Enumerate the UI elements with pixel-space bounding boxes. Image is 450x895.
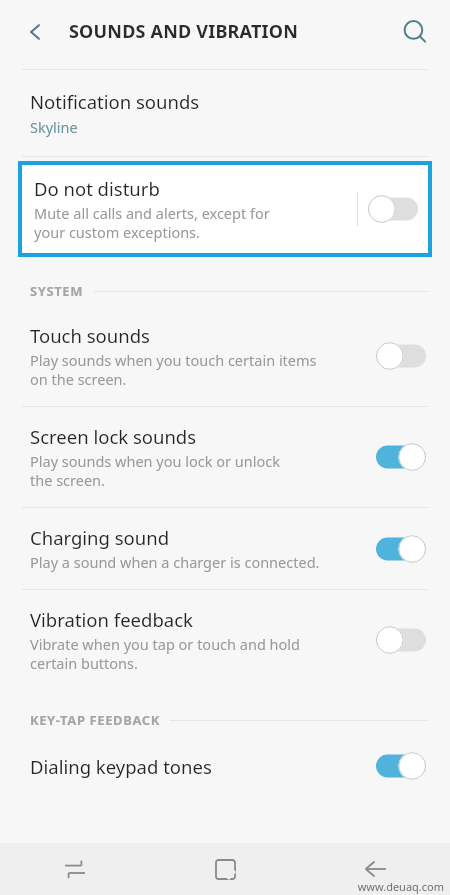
staticText: Do not disturb xyxy=(34,176,160,201)
staticText: Screen lock sounds xyxy=(30,424,197,449)
button[interactable]: Dialing keypad tones toggle xyxy=(376,751,426,781)
staticText: Notification sounds xyxy=(30,89,200,114)
button[interactable]: Do not disturb xyxy=(22,165,428,253)
button[interactable]: Dialing keypad tones xyxy=(0,735,450,781)
button[interactable]: Search xyxy=(392,9,438,55)
staticText: Play a sound when a charger is connected… xyxy=(30,552,320,572)
button[interactable]: Vibration feedback toggle xyxy=(376,625,426,655)
staticText: www.deuaq.com xyxy=(357,879,444,894)
button[interactable]: Screen lock sounds xyxy=(0,407,450,507)
staticText: Charging sound xyxy=(30,525,170,550)
button[interactable]: Touch sounds toggle xyxy=(376,341,426,371)
button[interactable]: Touch sounds xyxy=(0,306,450,406)
staticText: SYSTEM xyxy=(30,282,84,300)
button[interactable]: Do not disturb toggle xyxy=(368,194,418,224)
staticText: Dialing keypad tones xyxy=(30,754,212,779)
button[interactable]: Charging sound xyxy=(0,508,450,589)
staticText: Skyline xyxy=(30,117,78,137)
staticText: Vibration feedback xyxy=(30,607,193,632)
button[interactable]: Recent apps xyxy=(0,843,150,895)
staticText: SOUNDS AND VIBRATION xyxy=(69,19,299,44)
button[interactable]: Home xyxy=(150,843,300,895)
staticText: Vibrate when you tap or touch and hold c… xyxy=(30,634,300,673)
button[interactable]: Back xyxy=(14,10,58,54)
staticText: Play sounds when you lock or unlock the … xyxy=(30,451,280,490)
button[interactable]: Charging sound toggle xyxy=(376,534,426,564)
button[interactable]: Screen lock sounds toggle xyxy=(376,442,426,472)
staticText: Play sounds when you touch certain items… xyxy=(30,350,317,389)
staticText: Mute all calls and alerts, except for yo… xyxy=(34,203,270,242)
button[interactable]: Back xyxy=(300,843,450,895)
staticText: Touch sounds xyxy=(30,323,150,348)
button[interactable]: Notification sounds xyxy=(0,70,450,156)
button[interactable]: Vibration feedback xyxy=(0,590,450,690)
staticText: KEY-TAP FEEDBACK xyxy=(30,711,160,729)
